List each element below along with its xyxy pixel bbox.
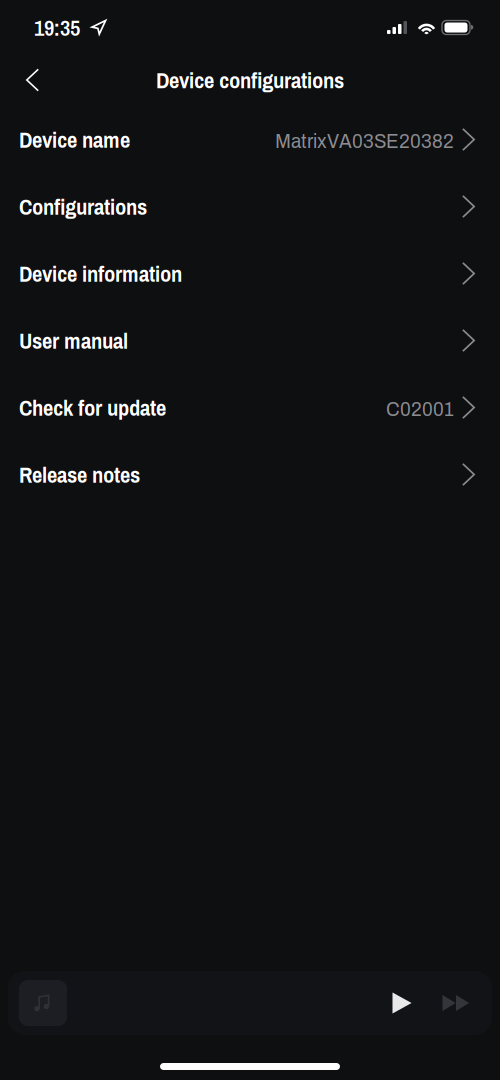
button[interactable]: Check for update	[0, 374, 500, 441]
button[interactable]: Play	[380, 981, 424, 1025]
button[interactable]: Device information	[0, 240, 500, 307]
staticText: Release notes	[19, 459, 140, 490]
staticText: Device name	[19, 124, 130, 155]
staticText: 19:35	[34, 12, 80, 43]
staticText: C02001	[386, 399, 454, 420]
button[interactable]: Release notes	[0, 441, 500, 508]
button[interactable]: Device name	[0, 106, 500, 173]
button[interactable]: Back	[0, 58, 55, 102]
staticText: Device information	[19, 258, 182, 289]
button[interactable]: Next track	[434, 981, 478, 1025]
staticText: Configurations	[19, 191, 147, 222]
button[interactable]: Configurations	[0, 173, 500, 240]
staticText: User manual	[19, 325, 128, 356]
staticText: Check for update	[19, 392, 166, 423]
staticText: Device configurations	[156, 65, 344, 95]
staticText: MatrixVA03SE20382	[275, 131, 454, 152]
button[interactable]: User manual	[0, 307, 500, 374]
button[interactable]: Now playing artwork	[19, 980, 67, 1026]
